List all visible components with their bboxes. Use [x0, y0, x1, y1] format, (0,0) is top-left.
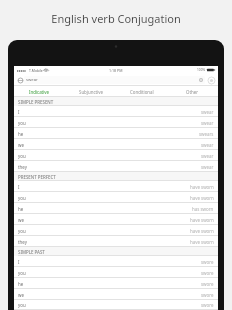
staticText: they	[18, 239, 27, 245]
button[interactable]: Select language	[17, 77, 24, 84]
staticText: swear	[201, 142, 214, 148]
staticText: SIMPLE PAST	[18, 249, 45, 255]
staticText: you	[18, 270, 26, 276]
button[interactable]: you	[14, 300, 218, 310]
button[interactable]: I	[14, 181, 218, 192]
button[interactable]: I	[14, 256, 218, 267]
staticText: swore	[201, 302, 214, 308]
staticText: 100%	[197, 68, 206, 72]
staticText: T-Mobile	[29, 68, 43, 73]
staticText: 1:18 PM	[109, 68, 123, 73]
button[interactable]: we	[14, 139, 218, 150]
button[interactable]: they	[14, 161, 218, 172]
staticText: we	[18, 142, 24, 148]
staticText: he	[18, 281, 24, 287]
staticText: you	[18, 228, 26, 234]
staticText: have sworn	[190, 217, 214, 223]
staticText: swear	[201, 120, 214, 126]
button[interactable]: we	[14, 214, 218, 225]
button[interactable]: Indicative	[14, 86, 65, 97]
button[interactable]: he	[14, 128, 218, 139]
staticText: has sworn	[192, 206, 214, 212]
staticText: swore	[201, 281, 214, 287]
staticText: I	[18, 184, 20, 190]
button[interactable]: you	[14, 150, 218, 161]
staticText: PRESENT PERFECT	[18, 174, 56, 180]
staticText: have sworn	[190, 184, 214, 190]
staticText: have sworn	[190, 195, 214, 201]
staticText: swore	[201, 259, 214, 265]
staticText: they	[18, 164, 27, 170]
button[interactable]: you	[14, 225, 218, 236]
staticText: you	[18, 153, 26, 159]
staticText: we	[18, 217, 24, 223]
button[interactable]: he	[14, 203, 218, 214]
staticText: swears	[199, 131, 214, 137]
button[interactable]: Subjunctive	[65, 86, 116, 97]
button[interactable]: Conditional	[116, 86, 167, 97]
staticText: you	[18, 302, 26, 308]
staticText: Other	[186, 89, 199, 95]
staticText: I	[18, 259, 20, 265]
staticText: we	[18, 292, 24, 298]
button[interactable]: you	[14, 192, 218, 203]
staticText: SIMPLE PRESENT	[18, 99, 54, 105]
button[interactable]: you	[14, 267, 218, 278]
staticText: you	[18, 195, 26, 201]
button[interactable]: he	[14, 278, 218, 289]
button[interactable]: they	[14, 236, 218, 247]
staticText: English verb Conjugation	[0, 11, 232, 26]
button[interactable]: swear	[24, 76, 205, 84]
staticText: I	[18, 109, 20, 115]
staticText: swear	[201, 109, 214, 115]
button[interactable]: Other	[167, 86, 218, 97]
staticText: have sworn	[190, 239, 214, 245]
staticText: swore	[201, 292, 214, 298]
staticText: swear	[26, 77, 38, 83]
button[interactable]: you	[14, 117, 218, 128]
staticText: swore	[201, 270, 214, 276]
staticText: have sworn	[190, 228, 214, 234]
staticText: he	[18, 131, 24, 137]
staticText: you	[18, 120, 26, 126]
button[interactable]: we	[14, 289, 218, 300]
staticText: swear	[201, 153, 214, 159]
staticText: Conditional	[130, 89, 154, 95]
button[interactable]: Speak	[207, 76, 215, 84]
staticText: Indicative	[29, 89, 50, 95]
staticText: Subjunctive	[79, 89, 103, 95]
staticText: he	[18, 206, 24, 212]
staticText: swear	[201, 164, 214, 170]
button[interactable]: I	[14, 106, 218, 117]
